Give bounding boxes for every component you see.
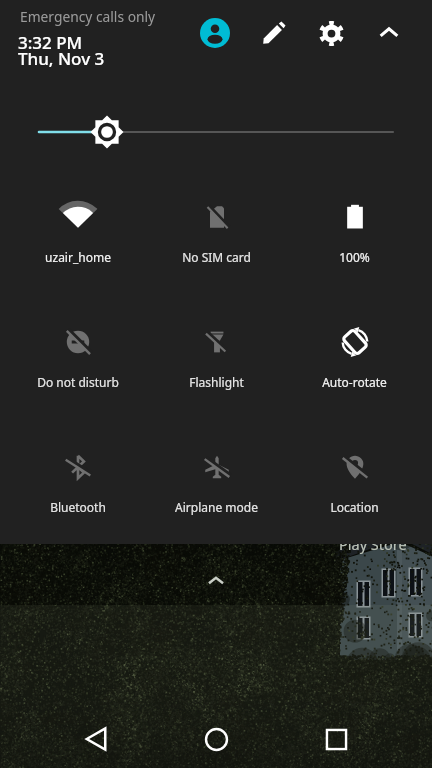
button[interactable]: Collapse quick settings	[192, 557, 240, 605]
staticText: Emergency calls only	[20, 7, 156, 26]
staticText: Auto-rotate	[322, 374, 387, 390]
button[interactable]: Edit	[253, 12, 295, 54]
button[interactable]: No SIM card	[147, 202, 285, 294]
button[interactable]: Bluetooth	[9, 452, 147, 544]
staticText: 100%	[339, 249, 370, 265]
button[interactable]: Recent apps	[308, 711, 364, 767]
staticText: Flashlight	[189, 374, 244, 390]
button[interactable]: Flashlight	[147, 327, 285, 419]
button[interactable]: 100%	[285, 202, 423, 294]
staticText: uzair_home	[45, 249, 111, 265]
button[interactable]: Settings	[310, 12, 352, 54]
button[interactable]: Brightness	[0, 108, 432, 156]
staticText: Airplane mode	[175, 499, 258, 515]
button[interactable]: Collapse	[368, 12, 410, 54]
staticText: Play Store	[339, 534, 407, 554]
staticText: 3:32 PM	[18, 31, 83, 54]
staticText: Do not disturb	[37, 374, 119, 390]
staticText: No SIM card	[182, 249, 251, 265]
staticText: Bluetooth	[50, 499, 106, 515]
button[interactable]: Auto-rotate	[285, 327, 423, 419]
staticText: Location	[330, 499, 379, 515]
button[interactable]: Home	[188, 711, 244, 767]
button[interactable]: Location	[285, 452, 423, 544]
button[interactable]: Back	[68, 711, 124, 767]
staticText: Thu, Nov 3	[18, 47, 105, 70]
button[interactable]: Do not disturb	[9, 327, 147, 419]
button[interactable]: Airplane mode	[147, 452, 285, 544]
button[interactable]: Account	[194, 12, 236, 54]
button[interactable]: uzair_home	[9, 202, 147, 294]
